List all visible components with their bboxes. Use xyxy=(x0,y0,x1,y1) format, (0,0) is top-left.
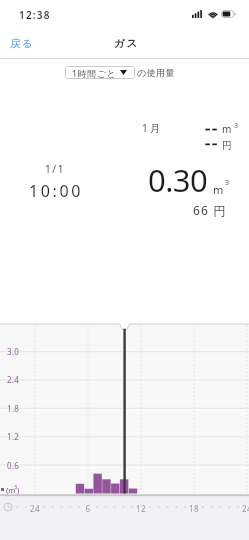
staticText: ガス xyxy=(114,37,140,50)
button[interactable]: 1時間ごと xyxy=(65,66,135,79)
staticText: 0.6 xyxy=(7,460,21,471)
staticText: 1.8 xyxy=(7,403,21,414)
staticText: 1/1 xyxy=(45,162,65,176)
staticText: 66 円 xyxy=(193,202,227,218)
staticText: 18 xyxy=(185,503,203,514)
staticText: 24 xyxy=(238,503,249,514)
staticText: 戻る xyxy=(10,37,34,50)
staticText: の使用量 xyxy=(137,67,175,78)
staticText: 3.0 xyxy=(7,346,21,357)
other: Wi-Fi xyxy=(208,10,218,18)
staticText: 24 xyxy=(26,503,44,514)
staticText: 3 xyxy=(225,178,230,188)
staticText: ) xyxy=(17,485,20,495)
staticText: 0.30 xyxy=(148,159,208,201)
staticText: 12 xyxy=(132,503,150,514)
other: Battery xyxy=(221,10,236,18)
staticText: 12:38 xyxy=(19,8,51,22)
staticText: 1時間ごと xyxy=(72,67,117,79)
staticText: m xyxy=(213,182,224,197)
staticText: 6 xyxy=(79,503,97,514)
staticText: 3 xyxy=(234,121,239,131)
staticText: 1月 xyxy=(142,121,163,135)
other: Cellular signal xyxy=(192,10,203,18)
staticText: m xyxy=(222,122,232,136)
staticText: (m xyxy=(6,485,16,495)
button[interactable]: 戻る xyxy=(2,33,42,54)
staticText: 10:00 xyxy=(29,180,83,202)
staticText: 円 xyxy=(222,139,232,152)
staticText: 1.2 xyxy=(7,431,21,442)
staticText: 3 xyxy=(14,483,18,490)
staticText: 2.4 xyxy=(7,374,21,385)
